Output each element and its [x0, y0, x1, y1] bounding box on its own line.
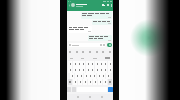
button[interactable]: [99, 67, 103, 73]
button[interactable]: [77, 61, 81, 67]
button[interactable]: [73, 67, 77, 73]
button[interactable]: Video call: [101, 3, 105, 7]
button[interactable]: [70, 73, 74, 79]
button[interactable]: [88, 79, 92, 85]
button[interactable]: [90, 67, 94, 73]
button[interactable]: [108, 61, 112, 67]
button[interactable]: [86, 67, 90, 73]
button[interactable]: [95, 61, 99, 67]
button[interactable]: [73, 79, 77, 85]
button[interactable]: [83, 79, 87, 85]
button[interactable]: Shift: [68, 79, 72, 85]
button[interactable]: Voice message: [107, 43, 112, 47]
button[interactable]: [75, 73, 79, 79]
button[interactable]: Enter: [108, 87, 113, 92]
button[interactable]: [97, 73, 101, 79]
button[interactable]: [98, 79, 102, 85]
button[interactable]: More options: [110, 4, 112, 7]
button[interactable]: [89, 36, 111, 41]
button[interactable]: [101, 73, 105, 79]
button[interactable]: [84, 73, 88, 79]
button[interactable]: [103, 61, 107, 67]
button[interactable]: Backspace: [108, 79, 112, 85]
button[interactable]: [79, 73, 83, 79]
button[interactable]: [93, 21, 111, 24]
button[interactable]: [78, 79, 82, 85]
button[interactable]: [68, 61, 72, 67]
button[interactable]: [95, 67, 99, 73]
button[interactable]: [81, 61, 85, 67]
button[interactable]: [81, 67, 85, 73]
button[interactable]: Call: [106, 3, 110, 7]
button[interactable]: [92, 73, 96, 79]
button[interactable]: [69, 43, 105, 47]
button[interactable]: Back: [68, 2, 112, 8]
button[interactable]: [103, 79, 107, 85]
button[interactable]: [68, 67, 72, 73]
button[interactable]: [90, 61, 94, 67]
button[interactable]: [82, 13, 111, 18]
button[interactable]: Back: [68, 4, 71, 7]
button[interactable]: [69, 27, 91, 32]
button[interactable]: [93, 79, 97, 85]
button[interactable]: [73, 61, 77, 67]
button[interactable]: [86, 61, 90, 67]
button[interactable]: [108, 67, 112, 73]
button[interactable]: [103, 67, 107, 73]
button[interactable]: [88, 73, 92, 79]
button[interactable]: [77, 67, 81, 73]
button[interactable]: [99, 61, 103, 67]
button[interactable]: [106, 73, 110, 79]
